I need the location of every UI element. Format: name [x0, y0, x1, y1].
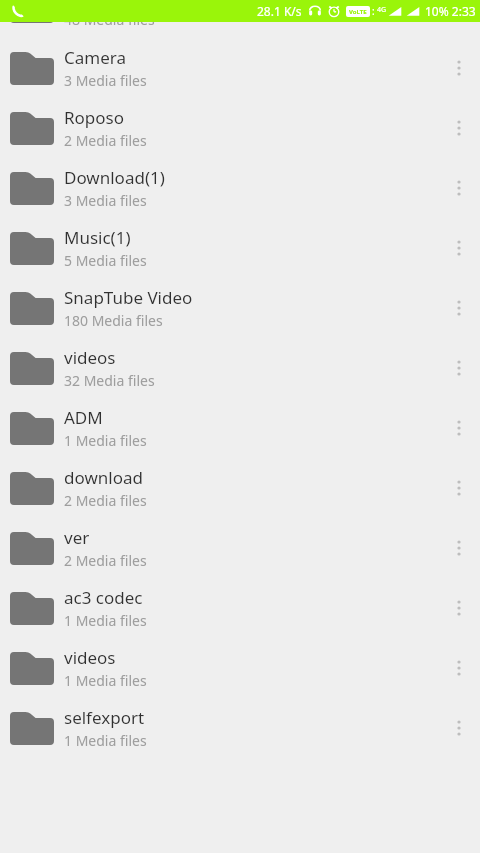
button[interactable]: SnapTube Video	[0, 278, 480, 338]
button[interactable]: More options	[438, 338, 480, 398]
button[interactable]: Download(1)	[0, 158, 480, 218]
button[interactable]: Music(1)	[0, 218, 480, 278]
button[interactable]: Roposo	[0, 98, 480, 158]
button[interactable]: More options	[438, 158, 480, 218]
staticText: 1 Media files	[64, 731, 147, 750]
staticText: ac3 codec	[64, 586, 143, 609]
staticText: Download(1)	[64, 166, 165, 189]
staticText: 1 Media files	[64, 671, 147, 690]
button[interactable]: More options	[438, 218, 480, 278]
button[interactable]: selfexport	[0, 698, 480, 758]
staticText: Music(1)	[64, 226, 131, 249]
staticText: :	[372, 4, 375, 18]
button[interactable]: More options	[438, 38, 480, 98]
staticText: Roposo	[64, 106, 125, 129]
staticText: VoLTE	[349, 8, 367, 16]
button[interactable]: More options	[438, 398, 480, 458]
button[interactable]: ver	[0, 518, 480, 578]
staticText: ADM	[64, 406, 103, 429]
staticText: 48 Media files	[64, 10, 155, 29]
staticText: 1 Media files	[64, 611, 147, 630]
staticText: 3 Media files	[64, 191, 147, 210]
staticText: 4G	[377, 5, 387, 15]
button[interactable]: More options	[438, 278, 480, 338]
button[interactable]: 48 Media files	[0, 0, 480, 38]
staticText: 2 Media files	[64, 131, 147, 150]
button[interactable]: More options	[438, 518, 480, 578]
staticText: ver	[64, 526, 90, 549]
staticText: 1 Media files	[64, 431, 147, 450]
button[interactable]: More options	[438, 698, 480, 758]
staticText: 32 Media files	[64, 371, 155, 390]
staticText: 28.1 K/s	[257, 3, 302, 19]
button[interactable]: More options	[438, 458, 480, 518]
staticText: 2 Media files	[64, 491, 147, 510]
staticText: download	[64, 466, 143, 489]
button[interactable]: download	[0, 458, 480, 518]
button[interactable]: ADM	[0, 398, 480, 458]
button[interactable]: ac3 codec	[0, 578, 480, 638]
button[interactable]: videos	[0, 338, 480, 398]
staticText: SnapTube Video	[64, 286, 193, 309]
button[interactable]: Camera	[0, 38, 480, 98]
staticText: selfexport	[64, 706, 145, 729]
button[interactable]: More options	[440, 0, 480, 32]
button[interactable]: More options	[438, 638, 480, 698]
staticText: videos	[64, 646, 116, 669]
button[interactable]: More options	[438, 98, 480, 158]
staticText: 10% 2:33	[425, 3, 476, 19]
button[interactable]: videos	[0, 638, 480, 698]
staticText: 2 Media files	[64, 551, 147, 570]
staticText: videos	[64, 346, 116, 369]
staticText: Camera	[64, 46, 126, 69]
staticText: 180 Media files	[64, 311, 163, 330]
button[interactable]: More options	[438, 578, 480, 638]
staticText: 5 Media files	[64, 251, 147, 270]
staticText: 3 Media files	[64, 71, 147, 90]
